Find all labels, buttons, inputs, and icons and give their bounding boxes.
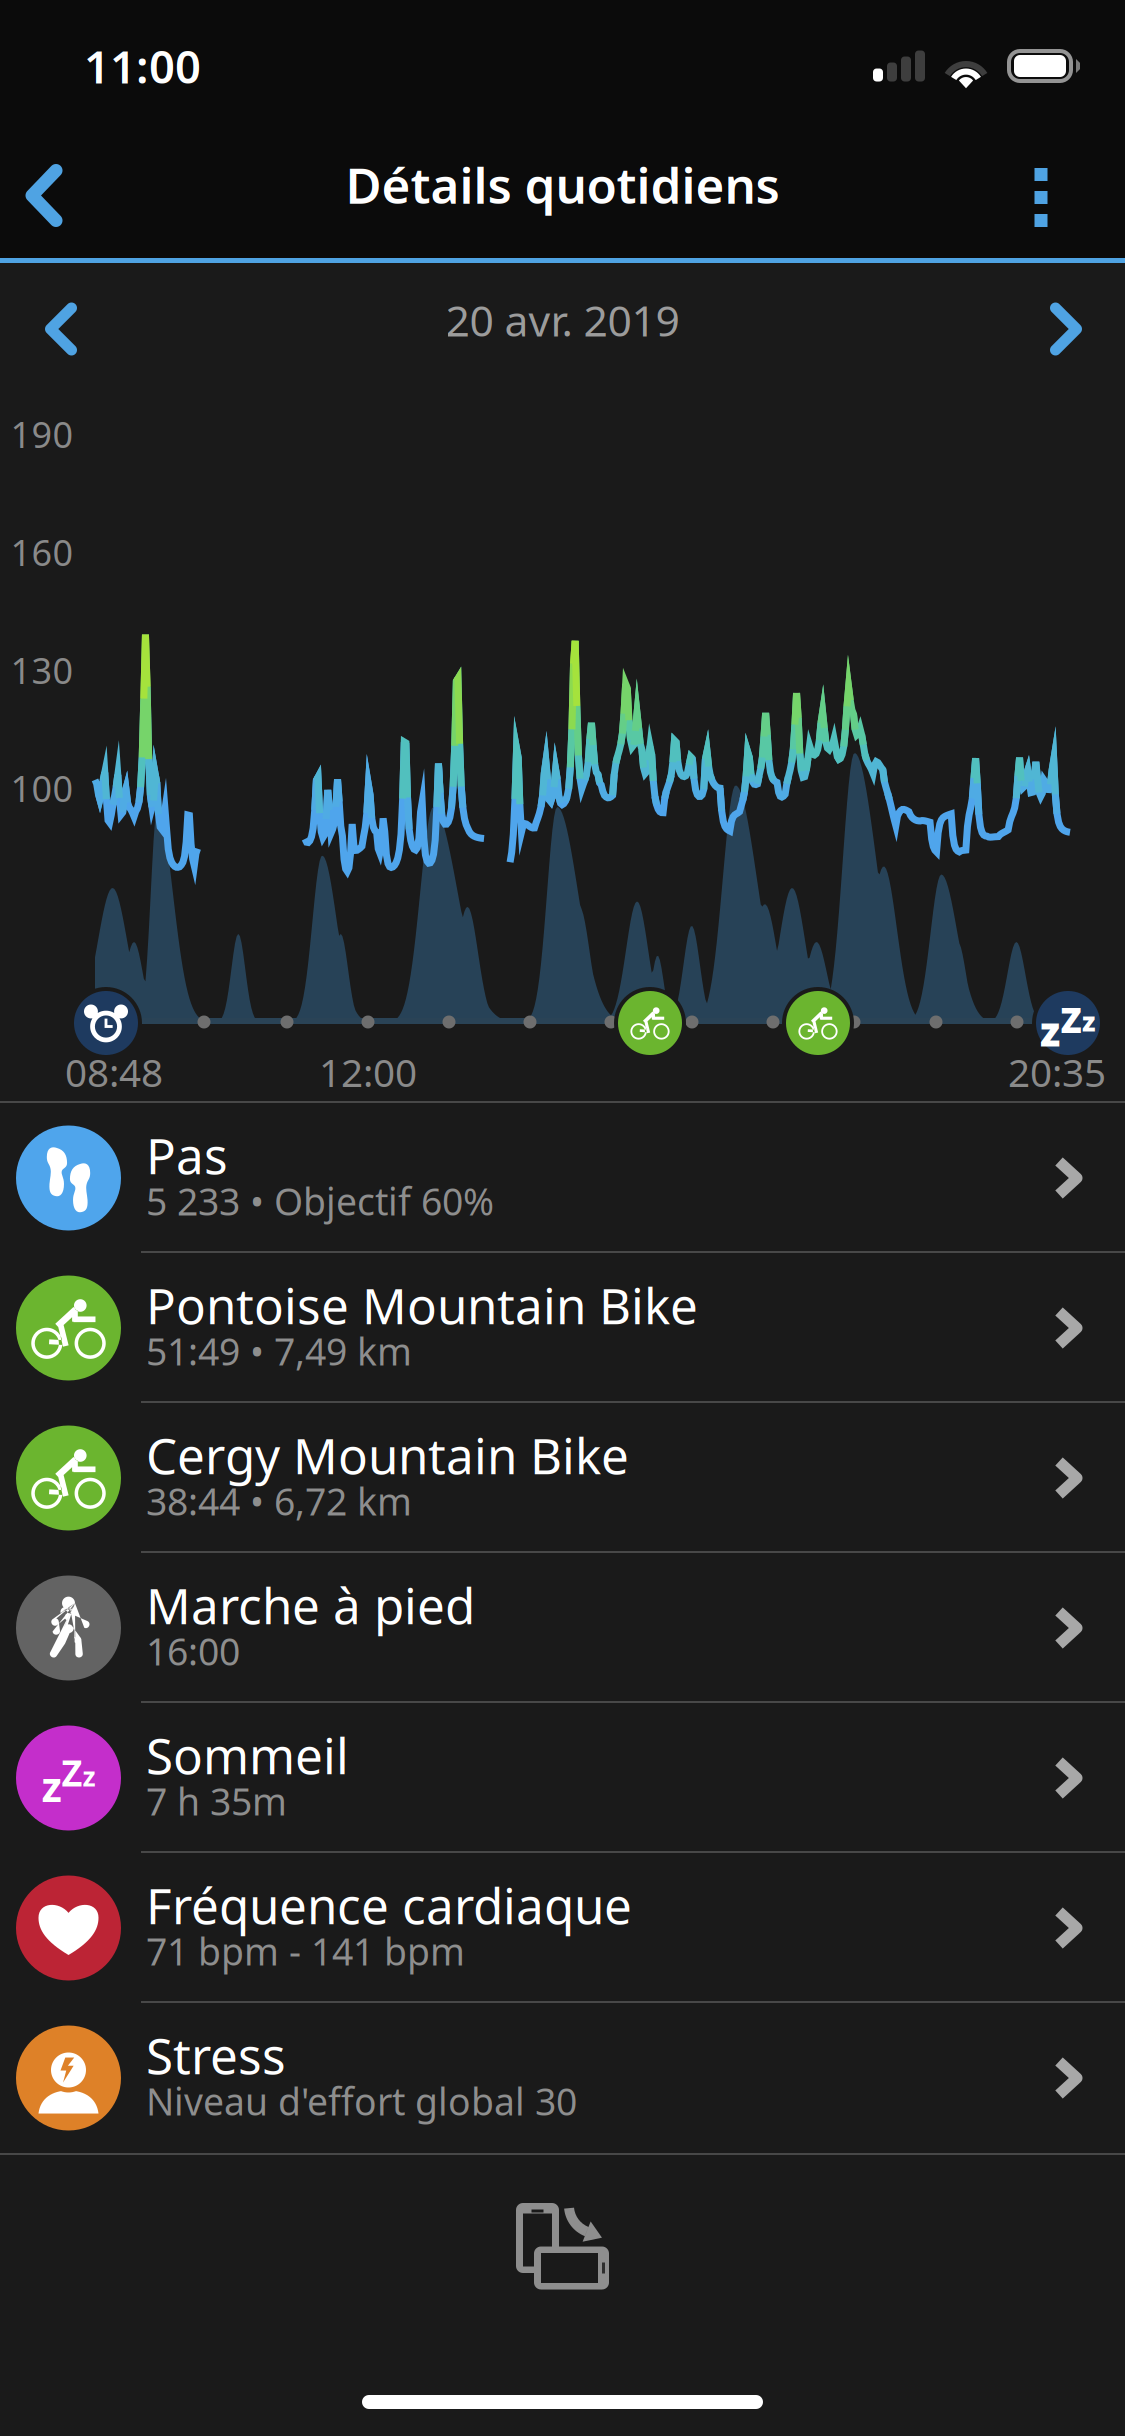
staticText: z	[82, 1759, 95, 1794]
button[interactable]: Cergy Mountain Bike	[0, 1403, 1125, 1553]
staticText: 190	[10, 410, 73, 458]
button[interactable]: Cycling activity	[782, 987, 854, 1059]
staticText: z	[1082, 1003, 1096, 1039]
button[interactable]: Back	[0, 129, 88, 261]
staticText: 5 233 • Objectif 60%	[146, 1176, 494, 1226]
staticText: 08:48	[65, 1046, 163, 1098]
button[interactable]: More options	[986, 131, 1096, 263]
staticText: 7 h 35m	[146, 1776, 287, 1826]
staticText: 130	[10, 646, 73, 694]
staticText: Marche à pied	[146, 1572, 475, 1638]
staticText: 160	[10, 528, 73, 576]
staticText: 11:00	[84, 36, 201, 96]
button[interactable]: Wake time	[70, 987, 142, 1059]
staticText: 71 bpm - 141 bpm	[146, 1926, 465, 1976]
staticText: Pas	[146, 1122, 228, 1188]
button[interactable]: Cycling activity	[614, 987, 686, 1059]
staticText: Niveau d'effort global 30	[146, 2076, 577, 2126]
staticText: Cergy Mountain Bike	[146, 1422, 629, 1488]
button[interactable]: Stress	[0, 2003, 1125, 2153]
button[interactable]: Previous day	[1, 261, 121, 397]
button[interactable]: Pas	[0, 1103, 1125, 1253]
button[interactable]: Fréquence cardiaque	[0, 1853, 1125, 2003]
button[interactable]: Sync device	[467, 2179, 657, 2319]
staticText: Pontoise Mountain Bike	[146, 1272, 698, 1338]
button[interactable]: Pontoise Mountain Bike	[0, 1253, 1125, 1403]
button[interactable]: z	[0, 1703, 1125, 1853]
staticText: 51:49 • 7,49 km	[146, 1326, 412, 1376]
staticText: 100	[10, 764, 73, 812]
staticText: Stress	[146, 2022, 286, 2088]
staticText: 20 avr. 2019	[445, 292, 679, 348]
staticText: 20:35	[1008, 1046, 1106, 1098]
staticText: z	[1040, 1004, 1060, 1057]
staticText: Z	[61, 1749, 82, 1796]
button[interactable]: Next day	[1006, 261, 1125, 397]
staticText: 12:00	[319, 1046, 417, 1098]
staticText: Sommeil	[146, 1722, 349, 1788]
staticText: Fréquence cardiaque	[146, 1872, 632, 1938]
staticText: z	[41, 1759, 61, 1813]
staticText: 38:44 • 6,72 km	[146, 1476, 412, 1526]
button[interactable]: Sleep	[1032, 987, 1104, 1059]
staticText: Détails quotidiens	[345, 152, 779, 217]
staticText: Z	[1060, 996, 1081, 1042]
button[interactable]: Marche à pied	[0, 1553, 1125, 1703]
staticText: 16:00	[146, 1626, 240, 1676]
